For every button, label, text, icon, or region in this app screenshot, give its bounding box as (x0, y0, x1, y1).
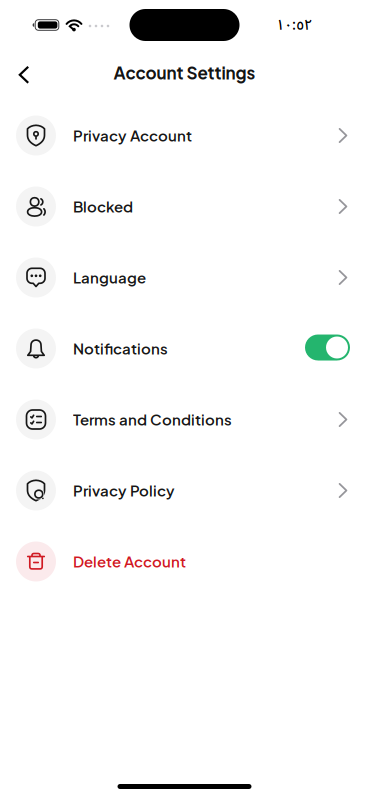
staticText: Privacy Account (73, 126, 192, 145)
staticText: Delete Account (73, 552, 186, 571)
button[interactable]: Privacy Policy (0, 455, 369, 526)
button[interactable]: Blocked (0, 171, 369, 242)
staticText: Terms and Conditions (73, 410, 232, 429)
staticText: ١٠:٥٢ (276, 9, 312, 40)
staticText: Privacy Policy (73, 481, 175, 500)
button[interactable]: Notifications (0, 313, 369, 384)
button[interactable]: Privacy Account (0, 100, 369, 171)
staticText: Language (73, 268, 146, 287)
button[interactable]: Language (0, 242, 369, 313)
button[interactable]: Notifications (305, 334, 350, 360)
button[interactable]: Back (0, 63, 36, 87)
staticText: Account Settings (113, 62, 255, 83)
staticText: Notifications (73, 339, 168, 358)
button[interactable]: Delete Account (0, 526, 369, 597)
staticText: Blocked (73, 197, 133, 216)
button[interactable]: Terms and Conditions (0, 384, 369, 455)
